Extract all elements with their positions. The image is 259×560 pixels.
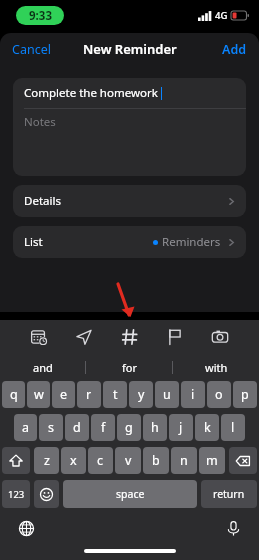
staticText: x: [70, 452, 77, 469]
staticText: 9:33: [29, 8, 52, 24]
button[interactable]: v: [115, 447, 141, 474]
staticText: m: [206, 452, 218, 469]
staticText: 4G: [215, 9, 228, 22]
button[interactable]: Add: [212, 35, 259, 64]
button[interactable]: b: [143, 447, 169, 474]
staticText: d: [73, 419, 81, 436]
staticText: e: [60, 386, 68, 403]
staticText: t: [113, 386, 118, 403]
button[interactable]: j: [169, 414, 193, 441]
staticText: Details: [24, 193, 61, 209]
button[interactable]: t: [103, 381, 127, 408]
button[interactable]: s: [39, 414, 63, 441]
staticText: p: [241, 386, 249, 403]
staticText: a: [22, 419, 30, 436]
button[interactable]: u: [155, 381, 179, 408]
button[interactable]: 123: [2, 480, 30, 508]
staticText: i: [191, 386, 195, 403]
button[interactable]: Location: [71, 324, 97, 350]
staticText: w: [34, 386, 44, 403]
button[interactable]: q: [2, 381, 25, 408]
staticText: q: [10, 386, 18, 403]
button[interactable]: n: [171, 447, 197, 474]
staticText: k: [204, 419, 211, 436]
button[interactable]: Backspace: [229, 447, 257, 474]
staticText: h: [151, 419, 159, 436]
staticText: s: [48, 419, 54, 436]
button[interactable]: Change keyboard: [14, 516, 38, 540]
button[interactable]: h: [143, 414, 167, 441]
button[interactable]: m: [199, 447, 225, 474]
button[interactable]: Date: [26, 324, 52, 350]
button[interactable]: return: [201, 480, 257, 508]
button[interactable]: o: [207, 381, 231, 408]
button[interactable]: Details: [13, 185, 246, 217]
staticText: y: [138, 386, 145, 403]
staticText: f: [101, 419, 106, 436]
button[interactable]: List: [13, 226, 246, 258]
staticText: l: [231, 419, 235, 436]
staticText: with: [205, 360, 228, 375]
staticText: c: [97, 452, 104, 469]
button[interactable]: r: [77, 381, 101, 408]
button[interactable]: Emoji: [34, 480, 59, 508]
staticText: z: [44, 452, 50, 469]
staticText: return: [213, 487, 245, 501]
button[interactable]: e: [52, 381, 75, 408]
button[interactable]: k: [195, 414, 219, 441]
button[interactable]: a: [14, 414, 37, 441]
staticText: v: [125, 452, 132, 469]
button[interactable]: Flag: [162, 324, 188, 350]
staticText: Cancel: [12, 41, 51, 58]
button[interactable]: Cancel: [0, 35, 61, 64]
button[interactable]: and: [0, 353, 85, 381]
button[interactable]: Shift: [2, 447, 30, 474]
button[interactable]: l: [221, 414, 245, 441]
button[interactable]: Tag: [117, 324, 143, 350]
staticText: b: [152, 452, 160, 469]
button[interactable]: Dictation: [221, 516, 245, 540]
button[interactable]: space: [63, 480, 197, 508]
staticText: List: [24, 234, 43, 250]
staticText: g: [125, 419, 133, 436]
staticText: Notes: [24, 114, 56, 130]
button[interactable]: d: [65, 414, 89, 441]
button[interactable]: z: [34, 447, 59, 474]
button[interactable]: p: [233, 381, 257, 408]
button[interactable]: i: [181, 381, 205, 408]
staticText: u: [163, 386, 171, 403]
staticText: Add: [222, 41, 247, 58]
staticText: space: [116, 487, 145, 501]
button[interactable]: f: [91, 414, 115, 441]
button[interactable]: c: [88, 447, 113, 474]
button[interactable]: with: [173, 353, 259, 381]
button[interactable]: w: [27, 381, 50, 408]
staticText: and: [33, 360, 53, 375]
button[interactable]: Camera: [207, 324, 233, 350]
staticText: 123: [8, 488, 25, 501]
staticText: Complete the homework: [24, 85, 158, 101]
button[interactable]: x: [61, 447, 86, 474]
staticText: for: [122, 360, 137, 375]
staticText: New Reminder: [83, 40, 177, 58]
button[interactable]: y: [129, 381, 153, 408]
staticText: r: [86, 386, 92, 403]
button[interactable]: for: [86, 353, 172, 381]
staticText: Reminders: [162, 234, 221, 250]
staticText: j: [179, 419, 183, 436]
button[interactable]: g: [117, 414, 141, 441]
staticText: o: [215, 386, 223, 403]
staticText: n: [180, 452, 188, 469]
